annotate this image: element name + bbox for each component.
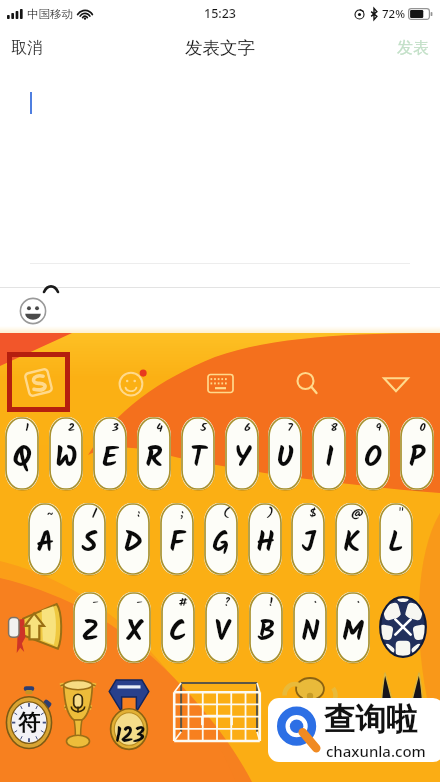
staticText: T	[190, 435, 206, 481]
button[interactable]: ·	[336, 592, 370, 663]
staticText: R	[145, 435, 163, 481]
button[interactable]: 4	[137, 417, 171, 490]
staticText: 1	[25, 418, 29, 437]
staticText: Z	[81, 609, 100, 655]
staticText: 8	[330, 418, 338, 437]
staticText: ~	[46, 504, 54, 523]
button[interactable]: ?	[205, 592, 239, 663]
button[interactable]: -	[117, 592, 151, 663]
staticText: ;	[180, 504, 184, 523]
staticText: F	[169, 520, 185, 566]
staticText: 5	[200, 418, 207, 437]
staticText: chaxunla.com	[326, 741, 426, 761]
button[interactable]: Numbers	[103, 675, 155, 755]
button[interactable]: (	[204, 503, 238, 575]
staticText: X	[126, 609, 143, 655]
button[interactable]: Shift	[6, 592, 68, 663]
staticText: S	[81, 520, 98, 566]
staticText: 发表文字	[185, 37, 255, 59]
button[interactable]: "	[379, 503, 413, 575]
button[interactable]: Space	[170, 678, 264, 746]
staticText: J	[301, 520, 316, 566]
staticText: 查询啦	[324, 700, 417, 739]
button[interactable]: 8	[312, 417, 346, 490]
staticText: ?	[223, 593, 231, 612]
staticText: E	[102, 435, 118, 481]
button[interactable]: Voice input	[52, 675, 104, 753]
staticText: O	[364, 435, 382, 481]
button[interactable]: 6	[225, 417, 259, 490]
staticText: 4	[156, 418, 163, 437]
staticText: Y	[234, 435, 251, 481]
staticText: :	[137, 504, 140, 523]
button[interactable]: 发表	[386, 29, 440, 67]
button[interactable]: !	[249, 592, 283, 663]
staticText: 0	[419, 418, 426, 437]
button[interactable]: ;	[160, 503, 194, 575]
button[interactable]: @	[335, 503, 369, 575]
staticText: L	[388, 520, 404, 566]
staticText: ·	[357, 593, 360, 612]
staticText: 中国移动	[27, 7, 73, 21]
button[interactable]: 1	[5, 417, 39, 490]
staticText: (	[223, 504, 229, 523]
button[interactable]: 0	[400, 417, 434, 490]
staticText: A	[36, 520, 55, 566]
button[interactable]: Keyboard layout	[200, 365, 240, 401]
staticText: 3	[112, 418, 119, 437]
button[interactable]: Symbols	[2, 681, 56, 753]
staticText: K	[343, 520, 361, 566]
button[interactable]: Emoji	[19, 297, 47, 325]
staticText: 发表	[397, 38, 429, 58]
staticText: 6	[244, 418, 251, 437]
button[interactable]: 9	[356, 417, 390, 490]
staticText: U	[276, 435, 294, 481]
staticText: V	[214, 609, 230, 655]
button[interactable]: Comma	[280, 665, 340, 719]
staticText: "	[398, 504, 404, 523]
button[interactable]: :	[116, 503, 150, 575]
staticText: ·	[314, 593, 317, 612]
button[interactable]: 2	[49, 417, 83, 490]
button[interactable]: )	[248, 503, 282, 575]
button[interactable]: Search	[287, 365, 327, 401]
staticText: 符	[18, 709, 40, 737]
staticText: I	[325, 435, 334, 481]
staticText: P	[409, 435, 425, 481]
staticText: W	[55, 435, 78, 481]
staticText: 取消	[11, 38, 43, 58]
button[interactable]: /	[72, 503, 106, 575]
staticText: N	[301, 609, 320, 655]
button[interactable]: ~	[28, 503, 62, 575]
button[interactable]: 7	[268, 417, 302, 490]
staticText: D	[123, 520, 143, 566]
staticText: !	[268, 593, 274, 612]
button[interactable]: #	[161, 592, 195, 663]
button[interactable]: Enter	[374, 669, 430, 715]
button[interactable]: $	[291, 503, 325, 575]
staticText: 9	[375, 418, 382, 437]
staticText: G	[212, 520, 230, 566]
staticText: @	[351, 504, 364, 523]
staticText: B	[257, 609, 276, 655]
staticText: 7	[287, 418, 293, 437]
button[interactable]: -	[73, 592, 107, 663]
button[interactable]: Emoji panel	[112, 365, 152, 401]
staticText: /	[92, 504, 96, 523]
staticText: 15:23	[204, 5, 237, 22]
staticText: 72%	[382, 6, 405, 22]
staticText: 2	[68, 418, 75, 437]
button[interactable]: 5	[181, 417, 215, 490]
staticText: 123	[115, 720, 146, 753]
staticText: M	[342, 609, 364, 655]
staticText: $	[309, 504, 317, 523]
button[interactable]: Delete	[372, 589, 434, 665]
staticText: Q	[12, 435, 32, 481]
button[interactable]: Sogou input	[7, 352, 70, 412]
button[interactable]: ·	[293, 592, 327, 663]
staticText: C	[169, 609, 187, 655]
button[interactable]: 取消	[0, 29, 54, 67]
button[interactable]: Collapse keyboard	[376, 365, 416, 401]
staticText: -	[92, 593, 99, 612]
button[interactable]: 3	[93, 417, 127, 490]
